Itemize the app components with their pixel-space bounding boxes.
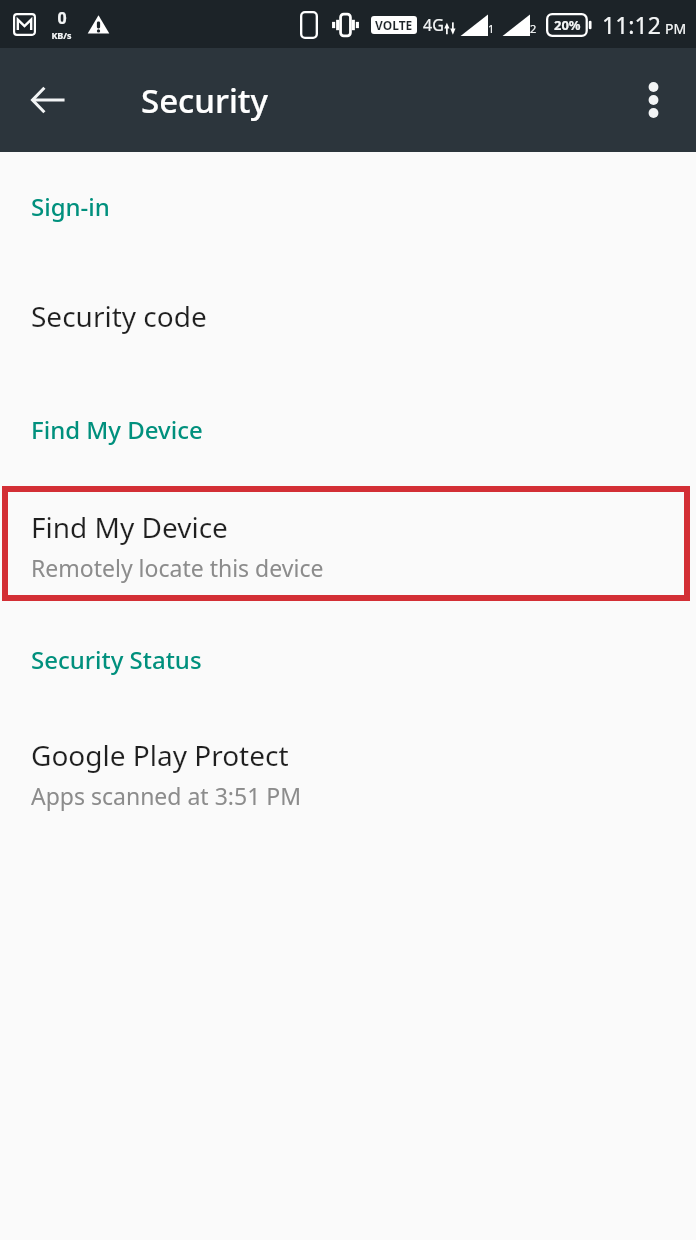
staticText: 0 <box>57 7 67 29</box>
staticText: Remotely locate this device <box>31 552 324 583</box>
staticText: Security <box>141 78 268 123</box>
staticText: PM <box>665 19 687 38</box>
staticText: VOLTE <box>375 17 413 33</box>
staticText: Apps scanned at 3:51 PM <box>31 780 302 811</box>
staticText: KB/s <box>51 29 72 41</box>
staticText: Find My Device <box>31 508 228 546</box>
button[interactable]: Find My Device <box>0 486 696 601</box>
staticText: Find My Device <box>31 413 203 446</box>
staticText: Sign-in <box>31 190 110 223</box>
staticText: 1 <box>488 21 495 36</box>
button[interactable]: More options <box>626 73 680 127</box>
staticText: Security code <box>31 297 207 335</box>
button[interactable]: Security code <box>0 223 696 341</box>
staticText: 20% <box>554 16 581 34</box>
button[interactable]: Google Play Protect <box>0 676 696 835</box>
staticText: 11:12 <box>602 9 661 40</box>
staticText: 2 <box>530 21 537 36</box>
staticText: 4G <box>423 14 444 36</box>
staticText: Security Status <box>31 643 202 676</box>
button[interactable]: Back <box>20 72 76 128</box>
staticText: Google Play Protect <box>31 736 289 774</box>
